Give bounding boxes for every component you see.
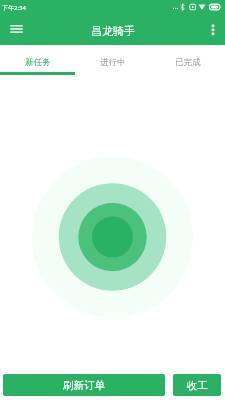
staticText: 下午2:34: [2, 4, 26, 12]
button[interactable]: 刷新订单: [3, 374, 165, 396]
button[interactable]: Start listening for orders: [0, 75, 225, 396]
staticText: 收工: [187, 379, 208, 392]
staticText: 刷新订单: [63, 379, 105, 392]
staticText: 已完成: [175, 57, 201, 68]
staticText: 昌龙骑手: [91, 24, 135, 38]
button[interactable]: 进行中: [75, 45, 150, 75]
button[interactable]: More options: [200, 15, 225, 45]
staticText: 新任务: [25, 57, 51, 68]
button[interactable]: 已完成: [150, 45, 225, 75]
button[interactable]: 新任务: [0, 45, 75, 75]
button[interactable]: Menu: [0, 15, 32, 45]
staticText: 进行中: [100, 57, 126, 68]
button[interactable]: 收工: [173, 374, 221, 396]
